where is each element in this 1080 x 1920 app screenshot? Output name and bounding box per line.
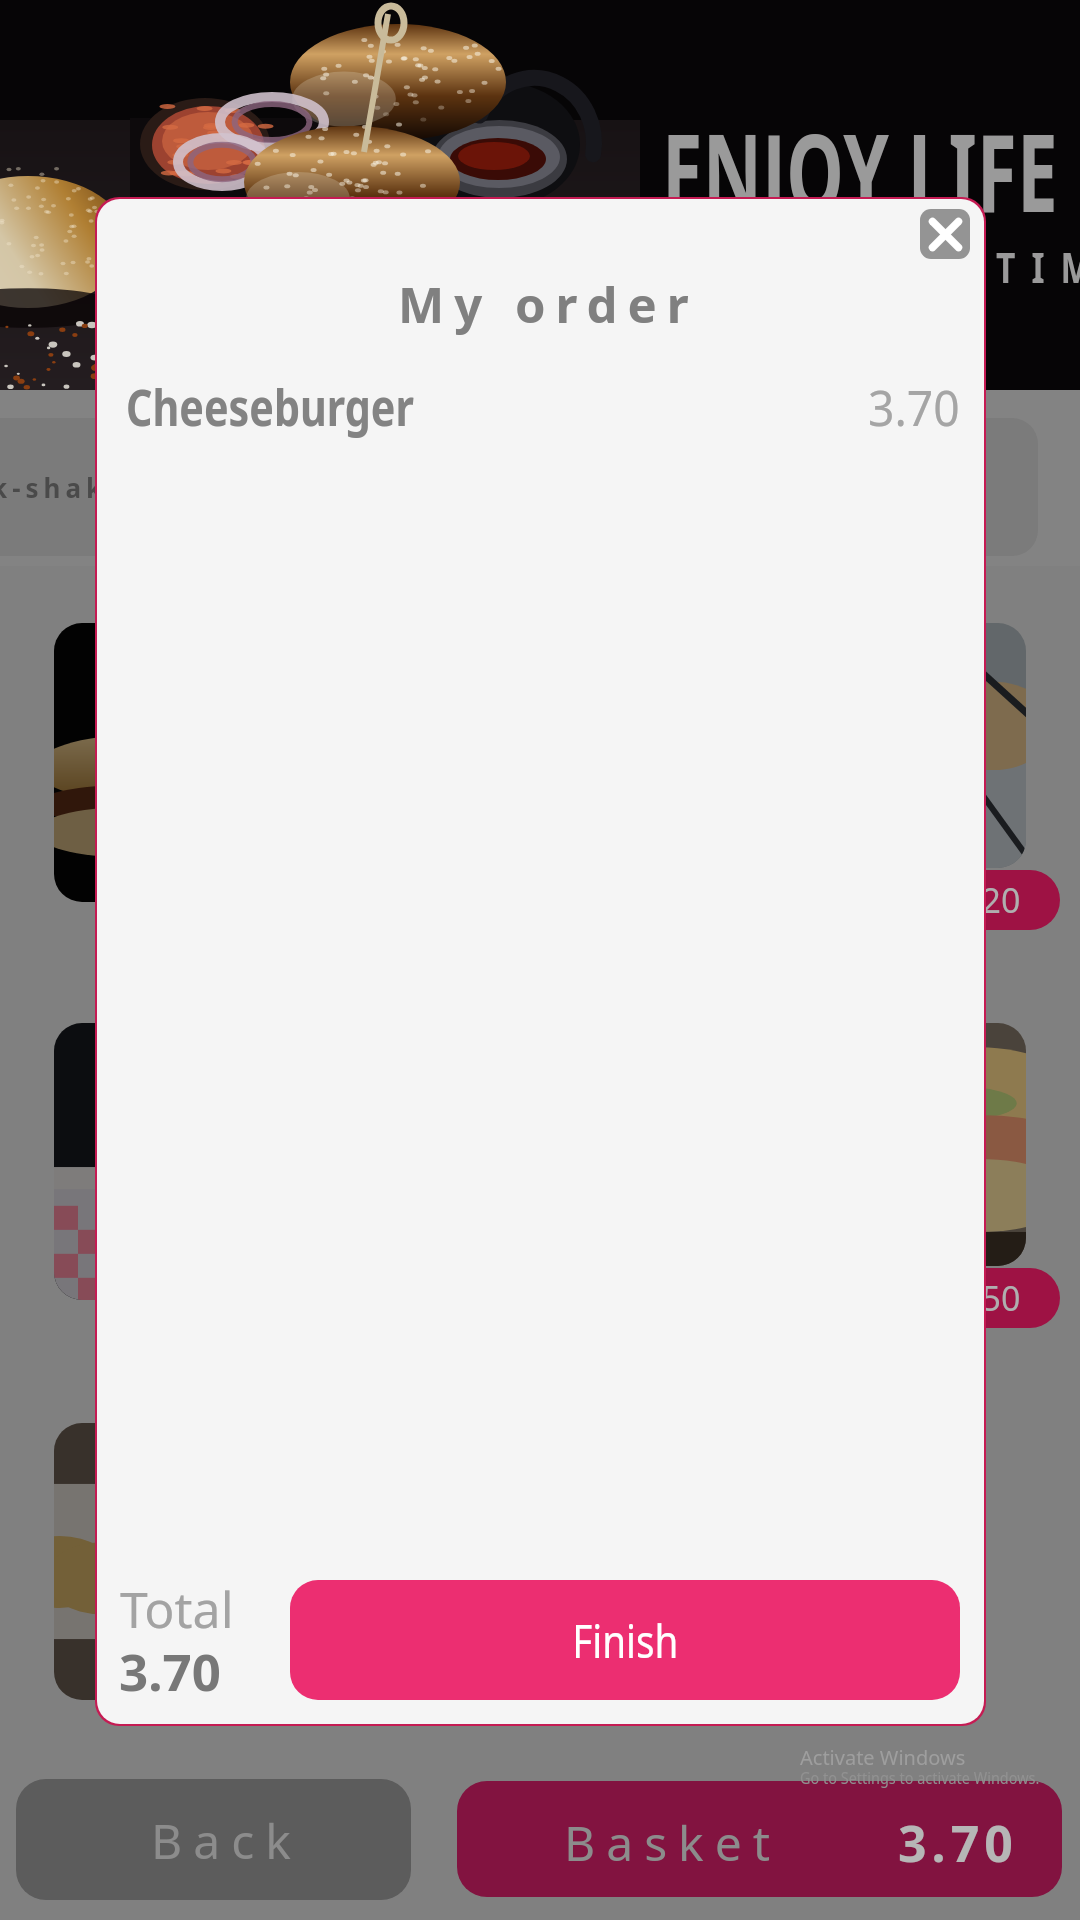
button[interactable] [54, 1023, 520, 1300]
staticText: Cheeseburger [126, 373, 414, 441]
staticText: Total [120, 1575, 234, 1643]
staticText: Finish [572, 1609, 679, 1672]
button[interactable]: 3.50 [860, 1268, 1060, 1328]
button[interactable] [54, 1423, 520, 1700]
staticText: 2.20 [953, 877, 1021, 923]
staticText: Activate Windows [800, 1744, 966, 1771]
staticText: Basket [564, 1810, 782, 1875]
button[interactable]: 2.20 [860, 870, 1060, 930]
staticText: Milk-shake [0, 470, 128, 505]
button[interactable] [54, 623, 520, 902]
staticText: Go to Settings to activate Windows. [800, 1766, 1040, 1789]
button[interactable]: Desserts [738, 418, 1038, 556]
button[interactable]: Close [920, 209, 970, 259]
staticText: 3.70 [119, 1636, 221, 1705]
staticText: ENJOY LIFE [662, 97, 1058, 244]
staticText: 3.50 [953, 1275, 1021, 1321]
staticText: Back [151, 1808, 302, 1873]
button[interactable]: Burgers [200, 418, 450, 556]
button[interactable] [560, 623, 1026, 868]
button[interactable]: Basket [457, 1781, 1062, 1897]
staticText: TIME [996, 238, 1080, 295]
button[interactable] [560, 1023, 1026, 1266]
button[interactable]: Milk-shake [0, 418, 182, 556]
staticText: My order [398, 271, 699, 338]
button[interactable]: Back [16, 1779, 411, 1900]
button[interactable]: Finish [290, 1580, 960, 1700]
staticText: 3.70 [898, 1809, 1018, 1877]
staticText: 3.70 [868, 373, 960, 441]
